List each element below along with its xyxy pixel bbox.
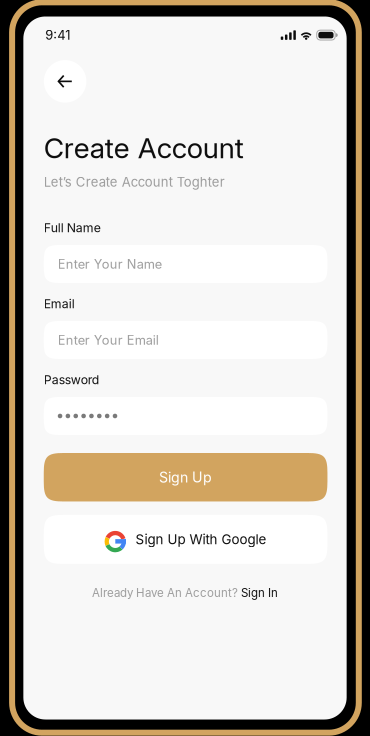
staticText: Sign Up [159,469,212,486]
button[interactable] [44,397,327,435]
staticText: Sign In [238,586,278,600]
button[interactable]: Sign Up With Google [44,515,327,564]
staticText: Sign Up With Google [136,531,267,547]
button[interactable]: Enter Your Name [44,245,327,283]
button[interactable]: Sign Up [44,453,327,501]
staticText: Enter Your Name [58,256,162,272]
staticText: Let’s Create Account Toghter [44,174,225,190]
button[interactable]: Back [44,60,86,103]
button[interactable]: Sign In [238,586,278,600]
button[interactable]: Enter Your Email [44,321,327,359]
staticText: Already Have An Account? [92,586,238,600]
staticText: 9:41 [45,27,70,43]
staticText: Create Account [44,131,244,165]
staticText: Full Name [44,220,101,235]
staticText: Enter Your Email [58,332,159,348]
staticText: Password [44,372,100,387]
staticText: Email [44,296,75,311]
